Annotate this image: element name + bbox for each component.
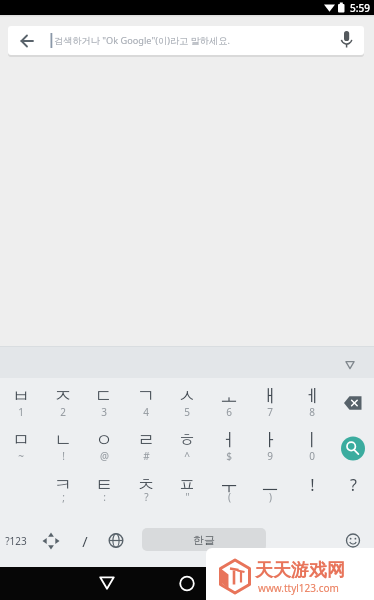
button[interactable]: ? (332, 474, 374, 496)
staticText: ; (62, 490, 65, 504)
button[interactable] (337, 525, 368, 556)
staticText: ㅇ (95, 429, 113, 451)
button[interactable]: / (75, 531, 95, 551)
button[interactable] (339, 434, 368, 463)
button[interactable]: ㅗ (208, 385, 250, 407)
staticText: ㅁ (12, 429, 30, 451)
button[interactable]: ㄱ (125, 385, 167, 407)
button[interactable]: 한글 (142, 528, 266, 551)
button[interactable]: ㅓ (208, 429, 250, 451)
staticText: 天天游戏网 (255, 559, 345, 582)
staticText: 2 (60, 405, 66, 419)
button[interactable] (334, 26, 360, 54)
staticText: ^ (184, 449, 190, 463)
staticText: 9 (267, 449, 273, 463)
button[interactable]: ㅣ (291, 429, 333, 451)
staticText: 검색하거나 "Ok Google"(이)라고 말하세요. (54, 34, 230, 47)
staticText: ( (228, 490, 231, 504)
staticText: ㅡ (261, 474, 279, 496)
staticText: ㅜ (220, 474, 238, 496)
button[interactable]: ㅍ (166, 474, 208, 496)
staticText: ) (269, 490, 272, 504)
button[interactable]: ㅇ (83, 429, 125, 451)
staticText: 8 (309, 405, 315, 419)
button[interactable]: ㅈ (42, 385, 84, 407)
button[interactable] (101, 525, 132, 556)
staticText: ㄴ (54, 429, 72, 451)
staticText: ㄱ (137, 385, 155, 407)
staticText: / (82, 531, 88, 551)
staticText: ㅎ (178, 429, 196, 451)
button[interactable] (170, 570, 204, 598)
staticText: ㅂ (12, 385, 30, 407)
staticText: ! (310, 474, 315, 496)
staticText: ㅌ (95, 474, 113, 496)
button[interactable]: ㅔ (291, 385, 333, 407)
button[interactable]: ㄹ (125, 429, 167, 451)
button[interactable]: ㅊ (125, 474, 167, 496)
staticText: @ (100, 449, 109, 463)
button[interactable] (90, 570, 124, 598)
staticText: 0 (309, 449, 315, 463)
button[interactable]: ㄴ (42, 429, 84, 451)
staticText: 6 (226, 405, 232, 419)
button[interactable] (8, 26, 364, 55)
button[interactable]: ㅋ (42, 474, 84, 496)
button[interactable] (14, 28, 40, 54)
staticText: ㄹ (137, 429, 155, 451)
staticText: ㅔ (303, 385, 321, 407)
staticText: ㄷ (95, 385, 113, 407)
staticText: 3 (101, 405, 107, 419)
button[interactable]: ㅐ (249, 385, 291, 407)
button[interactable]: ㄷ (83, 385, 125, 407)
staticText: ? (144, 490, 149, 504)
staticText: 7 (267, 405, 273, 419)
button[interactable]: ㅏ (249, 429, 291, 451)
staticText: # (143, 449, 150, 463)
button[interactable]: ?123 (0, 532, 33, 550)
staticText: 1 (18, 405, 24, 419)
staticText: 5:59 (350, 1, 370, 15)
staticText: ㅗ (220, 385, 238, 407)
staticText: ㅓ (220, 429, 238, 451)
staticText: ㅋ (54, 474, 72, 496)
button[interactable] (333, 386, 374, 420)
staticText: ㅅ (178, 385, 196, 407)
button[interactable]: ㅌ (83, 474, 125, 496)
staticText: ? (350, 474, 357, 496)
button[interactable]: ㅡ (249, 474, 291, 496)
staticText: ㅐ (261, 385, 279, 407)
staticText: ㅣ (303, 429, 321, 451)
staticText: ! (62, 449, 65, 463)
staticText: ~ (18, 449, 24, 463)
staticText: ㅏ (261, 429, 279, 451)
staticText: 한글 (193, 533, 215, 547)
button[interactable]: ㅁ (0, 429, 42, 451)
staticText: ㅍ (178, 474, 196, 496)
staticText: ㅊ (137, 474, 155, 496)
staticText: : (103, 490, 106, 504)
button[interactable] (337, 350, 363, 376)
staticText: 4 (143, 405, 149, 419)
button[interactable] (36, 525, 67, 556)
staticText: ㅈ (54, 385, 72, 407)
button[interactable]: ! (291, 474, 333, 496)
staticText: " (185, 490, 190, 504)
button[interactable]: ㅂ (0, 385, 42, 407)
staticText: ?123 (5, 534, 27, 548)
button[interactable]: ㅅ (166, 385, 208, 407)
staticText: 5 (184, 405, 190, 419)
button[interactable]: ㅜ (208, 474, 250, 496)
button[interactable]: ㅎ (166, 429, 208, 451)
staticText: $ (226, 449, 232, 463)
staticText: www.ttyl123.com (258, 581, 339, 595)
